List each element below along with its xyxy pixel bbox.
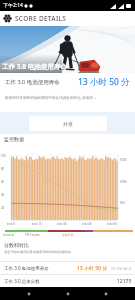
staticText: 500	[120, 201, 125, 205]
staticText: 100	[1, 154, 6, 158]
staticText: 40	[1, 193, 5, 197]
staticText: 时间 45	[82, 222, 92, 226]
button[interactable]: 工作 3.0 总体分数	[0, 275, 135, 288]
staticText: 工作 3.0 总体分数	[4, 278, 40, 284]
staticText: 12175	[117, 278, 132, 285]
staticText: 点击下面的项目以查看更多详细信息和比较结果	[4, 250, 71, 254]
staticText: SCORE DETAILS	[15, 14, 67, 23]
button[interactable]: Recents	[97, 287, 115, 300]
button[interactable]: 工作 3.0 电池使用寿命	[0, 262, 135, 275]
staticText: 工作 3.0 电池使用寿命	[2, 62, 67, 71]
staticText: 1000	[120, 180, 127, 184]
button[interactable]: Back	[20, 287, 38, 300]
staticText: 根据您日常和您的性能测试中的生活设备的评估, 设备的…	[5, 95, 130, 100]
staticText: 时间 0	[7, 222, 15, 226]
staticText: 时间 15	[32, 222, 42, 226]
staticText: 时间 60	[107, 222, 117, 226]
staticText: 工作 3.0 电池使用寿命	[5, 78, 60, 86]
staticText: 分数和对比	[4, 242, 29, 248]
staticText: 13 小时 50 分	[111, 266, 132, 271]
staticText: 13 小时 50 分	[78, 76, 130, 88]
staticText: 电池电量	[3, 233, 15, 237]
staticText: 下午2:14	[3, 2, 23, 9]
staticText: 20	[1, 206, 5, 210]
staticText: 监控数据	[4, 136, 24, 142]
staticText: 时间 30	[57, 222, 67, 226]
staticText: 60	[1, 180, 5, 184]
staticText: 共享	[63, 121, 73, 127]
staticText: 80	[1, 167, 5, 171]
staticText: 1500	[120, 158, 127, 162]
staticText: CPU 使用率	[25, 233, 40, 237]
button[interactable]: Home	[59, 287, 77, 300]
button[interactable]: 共享	[29, 116, 107, 131]
staticText: 工作 3.0 电池使用寿命	[4, 265, 49, 271]
button[interactable]: SCORE DETAILS	[0, 11, 135, 26]
staticText: 屏幕亮度	[62, 233, 74, 237]
staticText: 13 小时 50 分	[77, 265, 108, 272]
